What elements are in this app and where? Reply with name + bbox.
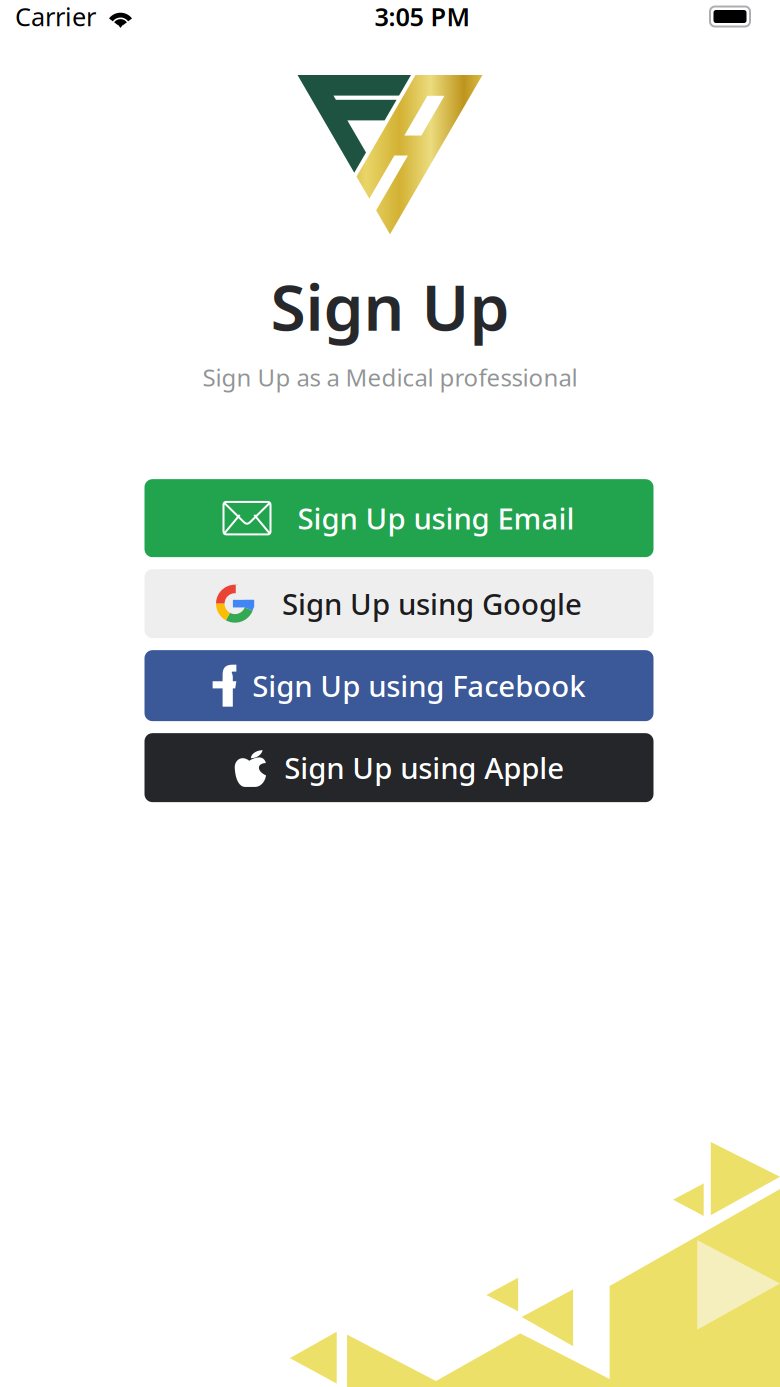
staticText: Sign Up (270, 263, 509, 348)
button[interactable]: Sign Up using Apple (144, 733, 653, 802)
staticText: Sign Up using Google (282, 584, 582, 623)
staticText: Sign Up as a Medical professional (202, 361, 577, 393)
button[interactable]: Sign Up using Google (144, 569, 653, 638)
staticText: 3:05 PM (374, 0, 470, 33)
staticText: Sign Up using Apple (284, 748, 564, 787)
button[interactable]: Sign Up using Email (144, 479, 653, 557)
staticText: Carrier (15, 0, 96, 33)
staticText: Sign Up using Email (297, 499, 574, 538)
button[interactable]: Sign Up using Facebook (144, 650, 653, 721)
staticText: Sign Up using Facebook (252, 666, 585, 705)
